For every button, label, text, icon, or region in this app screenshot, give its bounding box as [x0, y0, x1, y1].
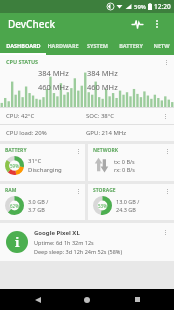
staticText: HARDWARE — [47, 42, 79, 49]
button[interactable]: More options — [148, 15, 166, 33]
button[interactable]: NETW — [148, 35, 174, 55]
staticText: DevCheck — [8, 17, 55, 31]
staticText: Deep sleep: 3d 12h 24m 52s (58%) — [34, 248, 123, 255]
staticText: 24.3 GB — [116, 206, 136, 213]
button[interactable]: DASHBOARD — [0, 35, 46, 55]
button[interactable]: CPU STATUS — [0, 55, 174, 141]
button[interactable]: CPU: 42°C — [0, 108, 174, 124]
staticText: STORAGE — [93, 187, 116, 194]
staticText: 59% — [134, 3, 146, 11]
button[interactable]: STORAGE options — [163, 187, 171, 195]
staticText: DASHBOARD — [6, 42, 41, 49]
staticText: Google Pixel XL — [34, 229, 80, 237]
button[interactable]: STORAGE — [88, 184, 174, 220]
staticText: 62% — [10, 203, 19, 209]
button[interactable]: RAM options — [74, 187, 82, 195]
staticText: SOC: 38°C — [86, 112, 115, 120]
staticText: SYSTEM — [87, 42, 108, 49]
button[interactable]: RAM — [0, 184, 85, 220]
button[interactable]: BATTERY — [0, 144, 85, 181]
staticText: Uptime: 6d 1h 32m 12s — [34, 239, 94, 246]
staticText: 3.7 GB — [28, 206, 45, 213]
button[interactable]: i — [0, 223, 174, 261]
staticText: rx: 0 B/s — [114, 166, 135, 173]
button[interactable]: Monitor — [128, 15, 146, 33]
staticText: 53% — [98, 203, 107, 209]
button[interactable]: SYSTEM — [80, 35, 114, 55]
button[interactable]: Home — [75, 289, 99, 310]
staticText: 13.0 GB / — [116, 198, 140, 205]
button[interactable]: CPU options — [161, 57, 171, 67]
staticText: 460 MHz — [38, 82, 69, 92]
button[interactable]: NETWORK — [88, 144, 174, 181]
button[interactable]: Device options — [160, 227, 170, 237]
staticText: 12:20 — [154, 2, 171, 11]
button[interactable]: Back — [26, 289, 50, 310]
staticText: 460 MHz — [87, 82, 118, 92]
staticText: 384 MHz — [38, 68, 69, 78]
button[interactable]: CPU load: 20% — [0, 125, 174, 141]
staticText: tx: 0 B/s — [114, 158, 135, 165]
button[interactable]: BATTERY — [114, 35, 148, 55]
staticText: BATTERY — [5, 147, 27, 154]
staticText: CPU STATUS — [6, 58, 39, 65]
button[interactable]: Battery options — [74, 147, 82, 155]
staticText: RAM — [5, 187, 17, 194]
staticText: BATTERY — [119, 42, 143, 49]
staticText: NETW — [153, 42, 170, 49]
staticText: 384 MHz — [87, 68, 118, 78]
staticText: Discharging — [28, 166, 62, 174]
staticText: GPU: 214 MHz — [86, 129, 127, 137]
staticText: i — [15, 233, 20, 251]
staticText: CPU: 42°C — [6, 112, 35, 120]
staticText: CPU load: 20% — [6, 129, 47, 137]
staticText: NETWORK — [93, 147, 119, 154]
staticText: 3.0 GB / — [28, 198, 49, 205]
staticText: 31°C — [28, 157, 42, 165]
button[interactable]: HARDWARE — [46, 35, 80, 55]
staticText: 59% — [10, 163, 19, 169]
button[interactable]: Network options — [163, 147, 171, 155]
button[interactable]: Recents — [125, 289, 149, 310]
